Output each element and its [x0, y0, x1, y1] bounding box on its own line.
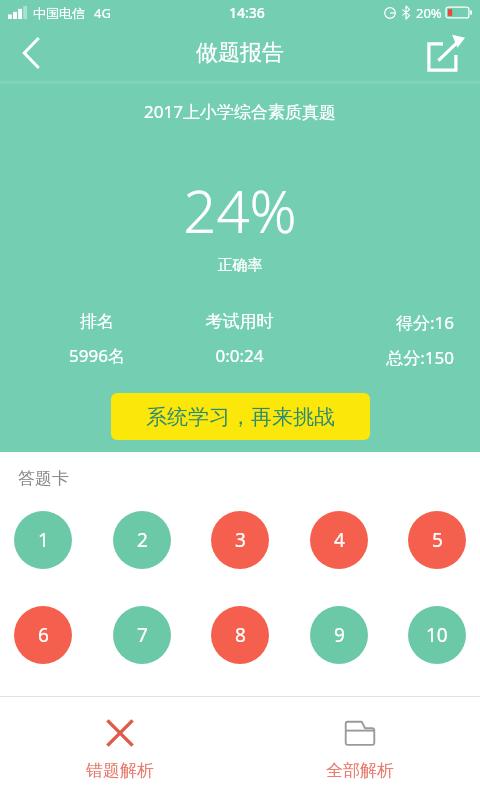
- staticText: 考试用时: [168, 311, 311, 332]
- staticText: 7: [137, 622, 148, 648]
- staticText: 错题解析: [86, 760, 154, 781]
- button[interactable]: 3: [211, 511, 269, 569]
- staticText: 0:0:24: [168, 344, 311, 367]
- staticText: 5: [432, 527, 443, 553]
- staticText: 1: [38, 527, 49, 553]
- staticText: 答题卡: [18, 468, 69, 489]
- button[interactable]: 8: [211, 606, 269, 664]
- button[interactable]: 返回: [0, 25, 62, 80]
- button[interactable]: 7: [113, 606, 171, 664]
- staticText: 14:36: [229, 3, 265, 22]
- staticText: 3: [235, 527, 246, 553]
- staticText: 排名: [26, 311, 168, 332]
- button[interactable]: 分享: [412, 25, 480, 80]
- staticText: 得分:16: [311, 311, 454, 334]
- staticText: 中国电信: [33, 5, 85, 21]
- staticText: 20%: [416, 4, 442, 22]
- other: 全部解析: [343, 716, 377, 750]
- staticText: 9: [334, 622, 345, 648]
- button[interactable]: 1: [14, 511, 72, 569]
- staticText: 4: [334, 527, 345, 553]
- button[interactable]: 10: [408, 606, 466, 664]
- button[interactable]: 5: [408, 511, 466, 569]
- staticText: 5996名: [26, 344, 168, 367]
- button[interactable]: 4: [310, 511, 368, 569]
- staticText: 6: [38, 622, 49, 648]
- staticText: 总分:150: [311, 346, 454, 369]
- button[interactable]: 全部解析: [240, 716, 480, 781]
- staticText: 系统学习，再来挑战: [146, 404, 335, 430]
- staticText: 24%: [0, 171, 480, 250]
- staticText: 2: [137, 527, 148, 553]
- button[interactable]: 错题解析: [0, 716, 240, 781]
- button[interactable]: 6: [14, 606, 72, 664]
- button[interactable]: 系统学习，再来挑战: [111, 393, 370, 440]
- staticText: 2017上小学综合素质真题: [0, 100, 480, 123]
- staticText: 10: [426, 622, 448, 648]
- staticText: 8: [235, 622, 246, 648]
- button[interactable]: 9: [310, 606, 368, 664]
- button[interactable]: 2: [113, 511, 171, 569]
- staticText: 做题报告: [196, 39, 284, 67]
- staticText: 正确率: [0, 256, 480, 275]
- staticText: 4G: [94, 4, 111, 22]
- other: 错题解析: [103, 716, 137, 750]
- staticText: 全部解析: [326, 760, 394, 781]
